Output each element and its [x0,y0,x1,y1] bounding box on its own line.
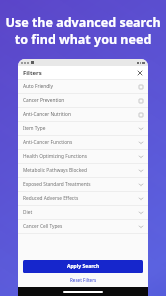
button[interactable]: Reset Filters [18,277,148,283]
button[interactable]: Cancer Prevention [18,94,148,107]
staticText: Auto Friendly [23,83,53,90]
button[interactable]: Diet [18,206,148,219]
staticText: Anti-Cancer Functions [23,139,73,146]
staticText: Item Type [23,125,46,132]
button[interactable]: Exposed Standard Treatments [18,178,148,191]
staticText: Health Optimizing Functions [23,153,88,160]
staticText: Apply Search [67,263,100,270]
button[interactable]: Metabolic Pathways Blocked [18,164,148,177]
button[interactable]: Close filters [136,69,143,76]
button[interactable]: Auto Friendly [18,80,148,93]
button[interactable]: Item Type [18,122,148,135]
staticText: Use the advanced search to find what you… [0,14,166,47]
button[interactable]: Health Optimizing Functions [18,150,148,163]
staticText: Reduced Adverse Effects [23,195,79,202]
button[interactable]: Cancer Cell Types [18,220,148,233]
button[interactable]: Apply Search [23,260,143,273]
staticText: Reset Filters [70,277,97,283]
staticText: Filters [23,69,42,77]
staticText: Cancer Prevention [23,97,65,104]
staticText: Exposed Standard Treatments [23,181,91,188]
staticText: Metabolic Pathways Blocked [23,167,87,174]
button[interactable]: Anti-Cancer Nutrition [18,108,148,121]
button[interactable]: Anti-Cancer Functions [18,136,148,149]
staticText: Cancer Cell Types [23,223,63,230]
button[interactable]: Reduced Adverse Effects [18,192,148,205]
staticText: Diet [23,209,33,216]
staticText: Anti-Cancer Nutrition [23,111,71,118]
